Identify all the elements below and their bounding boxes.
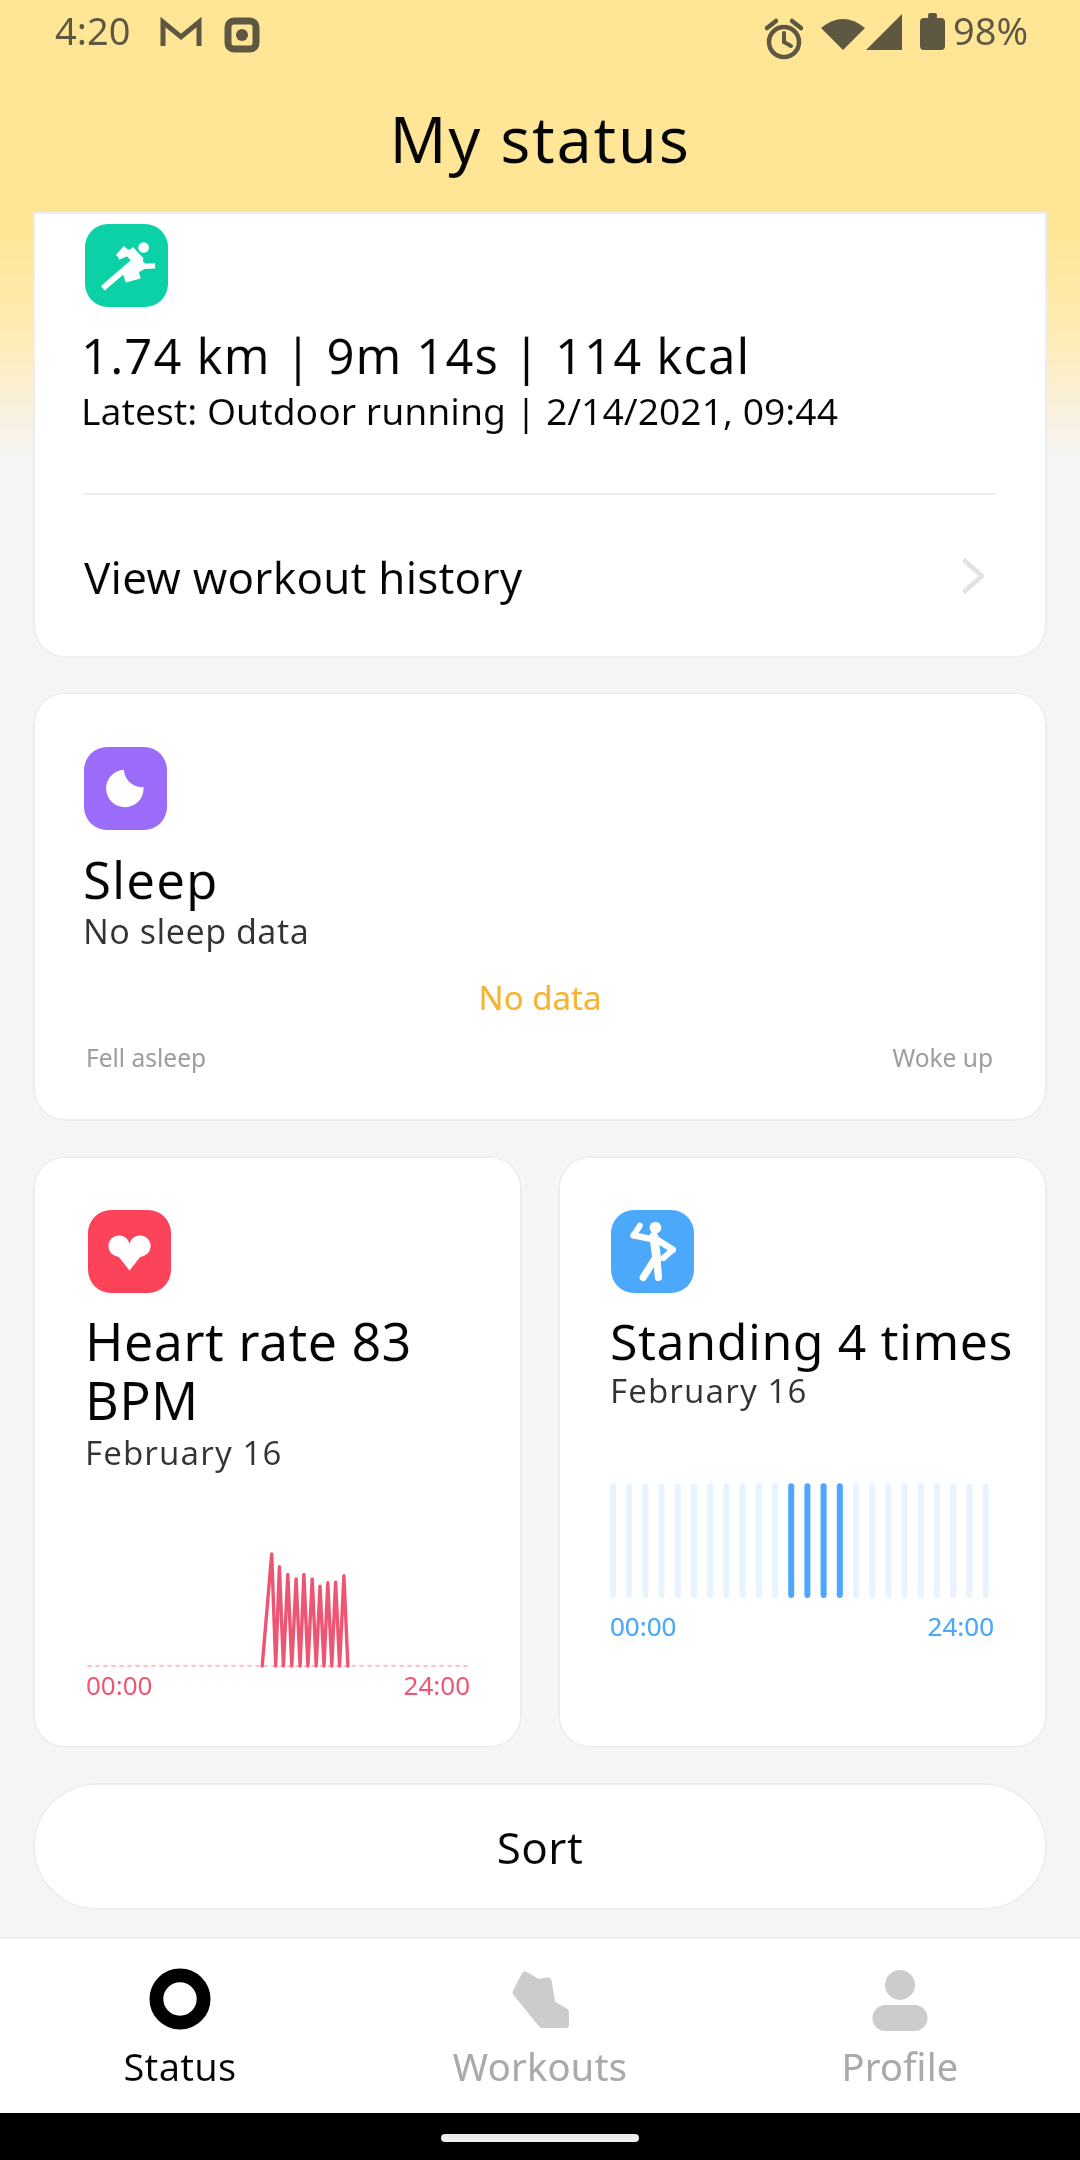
- staticText: 00:00: [610, 1608, 1080, 1643]
- staticText: View workout history: [84, 547, 984, 607]
- staticText: Workouts: [370, 2040, 710, 2092]
- staticText: February 16: [610, 1368, 1080, 1413]
- staticText: BPM: [85, 1364, 505, 1435]
- staticText: Status: [10, 2040, 350, 2092]
- button[interactable]: [33, 692, 1047, 1121]
- staticText: Profile: [730, 2040, 1070, 2092]
- staticText: 4:20: [55, 4, 955, 56]
- staticText: Woke up: [693, 1041, 993, 1074]
- staticText: No sleep data: [83, 908, 983, 954]
- button[interactable]: [33, 495, 1047, 658]
- button[interactable]: [0, 1938, 360, 2113]
- staticText: 98%: [828, 4, 1028, 56]
- staticText: 00:00: [86, 1667, 986, 1702]
- button[interactable]: [33, 1156, 522, 1748]
- staticText: 24:00: [170, 1667, 470, 1702]
- staticText: No data: [340, 975, 740, 1020]
- staticText: 24:00: [694, 1608, 994, 1643]
- button[interactable]: [33, 1783, 1047, 1910]
- other: Profile: [865, 1962, 935, 2032]
- staticText: Sort: [340, 1817, 740, 1877]
- button[interactable]: [360, 1938, 720, 2113]
- staticText: Heart rate 83: [85, 1305, 505, 1376]
- other: View workout history: [960, 555, 1000, 599]
- staticText: My status: [240, 96, 840, 182]
- button[interactable]: [33, 212, 1047, 493]
- staticText: February 16: [85, 1430, 985, 1475]
- other: Workouts: [505, 1966, 575, 2036]
- button[interactable]: [720, 1938, 1080, 2113]
- staticText: 1.74 km | 9m 14s | 114 kcal: [81, 322, 981, 389]
- other: Status: [145, 1964, 215, 2034]
- staticText: Standing 4 times: [610, 1307, 1070, 1375]
- button[interactable]: [558, 1156, 1047, 1748]
- staticText: Latest: Outdoor running | 2/14/2021, 09:…: [81, 385, 981, 436]
- staticText: Sleep: [83, 844, 983, 913]
- staticText: Fell asleep: [86, 1041, 986, 1074]
